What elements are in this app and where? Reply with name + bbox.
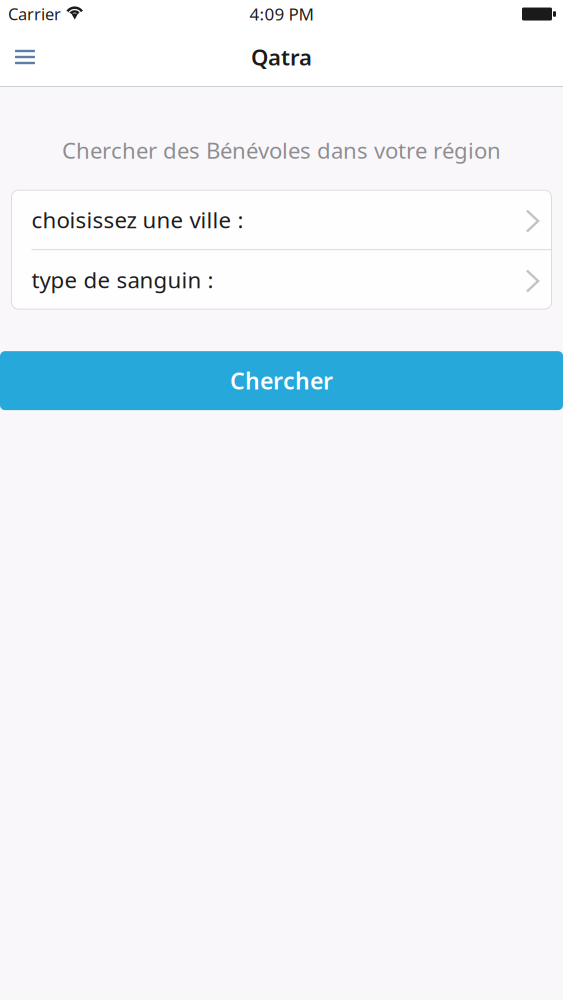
staticText: 4:09 PM <box>249 2 313 26</box>
button[interactable]: choisissez une ville : <box>11 190 551 249</box>
button[interactable]: Chercher <box>0 351 563 410</box>
staticText: type de sanguin : <box>31 264 213 295</box>
staticText: Qatra <box>251 42 312 72</box>
staticText: Chercher <box>230 365 333 396</box>
button[interactable]: type de sanguin : <box>11 250 551 309</box>
staticText: Carrier <box>8 3 61 25</box>
staticText: Chercher des Bénévoles dans votre région <box>62 135 501 165</box>
button[interactable]: Menu <box>0 35 50 79</box>
staticText: choisissez une ville : <box>31 204 243 235</box>
